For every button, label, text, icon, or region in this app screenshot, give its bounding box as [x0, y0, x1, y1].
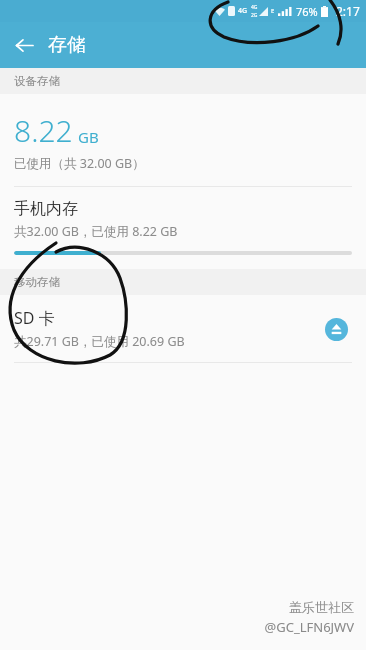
button[interactable]: 手机内存: [0, 187, 366, 269]
staticText: 设备存储: [14, 74, 60, 88]
button[interactable]: Back: [8, 29, 40, 61]
button[interactable]: SD 卡: [0, 295, 366, 362]
staticText: 已使用（共 32.00 GB）: [14, 155, 145, 172]
staticText: 移动存储: [14, 275, 60, 289]
staticText: 76%: [296, 4, 318, 19]
staticText: 2G: [251, 12, 258, 19]
staticText: GB: [78, 127, 99, 147]
staticText: 2:17: [336, 3, 360, 19]
staticText: E: [271, 7, 275, 15]
staticText: SD 卡: [14, 307, 55, 329]
staticText: 共29.71 GB，已使用 20.69 GB: [14, 333, 185, 350]
staticText: 4G: [238, 6, 248, 16]
staticText: 8.22: [14, 110, 73, 151]
staticText: @GC_LFN6JWV: [264, 618, 354, 636]
staticText: 共32.00 GB，已使用 8.22 GB: [14, 223, 178, 240]
button[interactable]: Eject SD card: [320, 313, 352, 345]
staticText: 盖乐世社区: [289, 599, 354, 615]
staticText: 存储: [48, 33, 86, 57]
staticText: 手机内存: [14, 199, 78, 219]
staticText: 4G: [251, 4, 258, 11]
